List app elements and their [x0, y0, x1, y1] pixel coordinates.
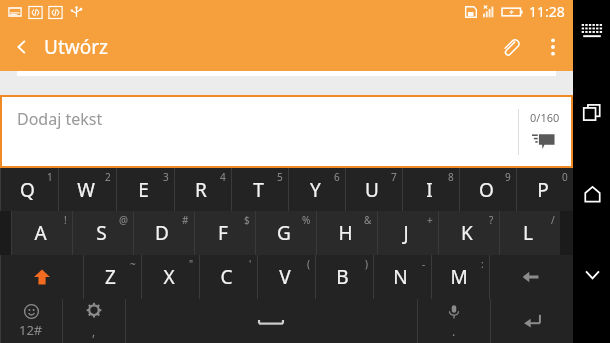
button[interactable]: Y: [288, 168, 345, 211]
button[interactable]: Attach: [487, 24, 533, 70]
staticText: ~: [130, 257, 136, 271]
button[interactable]: Dodaj tekst: [2, 97, 571, 166]
staticText: 5: [277, 170, 283, 184]
button[interactable]: Templates: [523, 120, 563, 160]
staticText: Z: [105, 264, 116, 290]
staticText: 4: [220, 170, 226, 184]
staticText: N: [393, 264, 408, 290]
button[interactable]: R: [174, 168, 231, 211]
staticText: M: [450, 264, 468, 290]
button[interactable]: S: [72, 211, 133, 255]
staticText: -: [422, 257, 426, 271]
staticText: C: [220, 264, 233, 290]
staticText: ,: [92, 323, 96, 339]
staticText: U: [365, 177, 379, 203]
button[interactable]: Symbols: [0, 299, 62, 343]
staticText: Q: [20, 177, 35, 203]
button[interactable]: Back: [0, 25, 44, 69]
button[interactable]: M: [431, 255, 489, 299]
button[interactable]: P: [516, 168, 573, 211]
button[interactable]: Home: [574, 176, 610, 212]
staticText: +: [427, 213, 433, 227]
button[interactable]: T: [231, 168, 288, 211]
button[interactable]: J: [377, 211, 438, 255]
staticText: ): [365, 257, 368, 271]
button[interactable]: More options: [533, 27, 573, 67]
staticText: %: [302, 213, 311, 227]
staticText: 12#: [19, 321, 43, 339]
staticText: .: [452, 323, 456, 339]
staticText: 3: [163, 170, 169, 184]
button[interactable]: L: [499, 211, 560, 255]
staticText: @: [119, 213, 128, 227]
staticText: ': [249, 257, 252, 271]
button[interactable]: O: [459, 168, 516, 211]
staticText: I: [426, 177, 433, 203]
staticText: T: [253, 177, 264, 203]
button[interactable]: X: [141, 255, 199, 299]
staticText: Y: [310, 177, 321, 203]
staticText: 0/160: [530, 110, 560, 125]
staticText: 2: [105, 170, 111, 184]
button[interactable]: I: [402, 168, 459, 211]
staticText: A: [34, 220, 47, 246]
button[interactable]: W: [58, 168, 116, 211]
staticText: ?: [489, 213, 494, 227]
staticText: Utwórz: [44, 34, 108, 60]
button[interactable]: Hide keyboard: [575, 14, 609, 48]
button[interactable]: Recent apps: [574, 94, 610, 130]
staticText: (: [307, 257, 310, 271]
staticText: S: [96, 220, 107, 246]
button[interactable]: N: [373, 255, 431, 299]
button[interactable]: Enter: [490, 299, 573, 343]
staticText: E: [138, 177, 149, 203]
button[interactable]: G: [255, 211, 316, 255]
staticText: V: [279, 264, 291, 290]
button[interactable]: Space: [125, 299, 417, 343]
button[interactable]: Q: [0, 168, 58, 211]
staticText: $: [244, 213, 250, 227]
staticText: O: [479, 177, 494, 203]
staticText: G: [277, 220, 291, 246]
button[interactable]: Settings: [62, 299, 125, 343]
button[interactable]: Backspace: [489, 255, 573, 299]
staticText: &: [364, 213, 372, 227]
button[interactable]: Back: [574, 256, 610, 292]
button[interactable]: F: [194, 211, 255, 255]
staticText: F: [218, 220, 228, 246]
staticText: Dodaj tekst: [17, 108, 103, 130]
button[interactable]: Shift: [0, 255, 83, 299]
staticText: H: [338, 220, 353, 246]
button[interactable]: D: [133, 211, 194, 255]
staticText: 7: [391, 170, 397, 184]
button[interactable]: U: [345, 168, 402, 211]
staticText: ": [189, 257, 194, 271]
staticText: 6: [334, 170, 340, 184]
staticText: X: [163, 264, 175, 290]
staticText: K: [461, 220, 473, 246]
staticText: D: [155, 220, 169, 246]
staticText: 1: [47, 170, 53, 184]
staticText: 9: [505, 170, 511, 184]
staticText: 8: [448, 170, 454, 184]
button[interactable]: V: [257, 255, 315, 299]
button[interactable]: K: [438, 211, 499, 255]
button[interactable]: Z: [83, 255, 141, 299]
staticText: /: [551, 213, 555, 227]
button[interactable]: E: [116, 168, 174, 211]
staticText: :: [481, 257, 484, 271]
button[interactable]: C: [199, 255, 257, 299]
staticText: 11:28: [529, 2, 565, 21]
staticText: R: [195, 177, 207, 203]
staticText: !: [64, 213, 67, 227]
button[interactable]: A: [11, 211, 72, 255]
staticText: 0: [562, 170, 568, 184]
staticText: P: [537, 177, 549, 203]
button[interactable]: Voice input: [417, 299, 490, 343]
staticText: J: [403, 220, 409, 246]
staticText: #: [182, 213, 189, 227]
staticText: B: [336, 264, 349, 290]
button[interactable]: B: [315, 255, 373, 299]
staticText: W: [77, 177, 95, 203]
button[interactable]: H: [316, 211, 377, 255]
